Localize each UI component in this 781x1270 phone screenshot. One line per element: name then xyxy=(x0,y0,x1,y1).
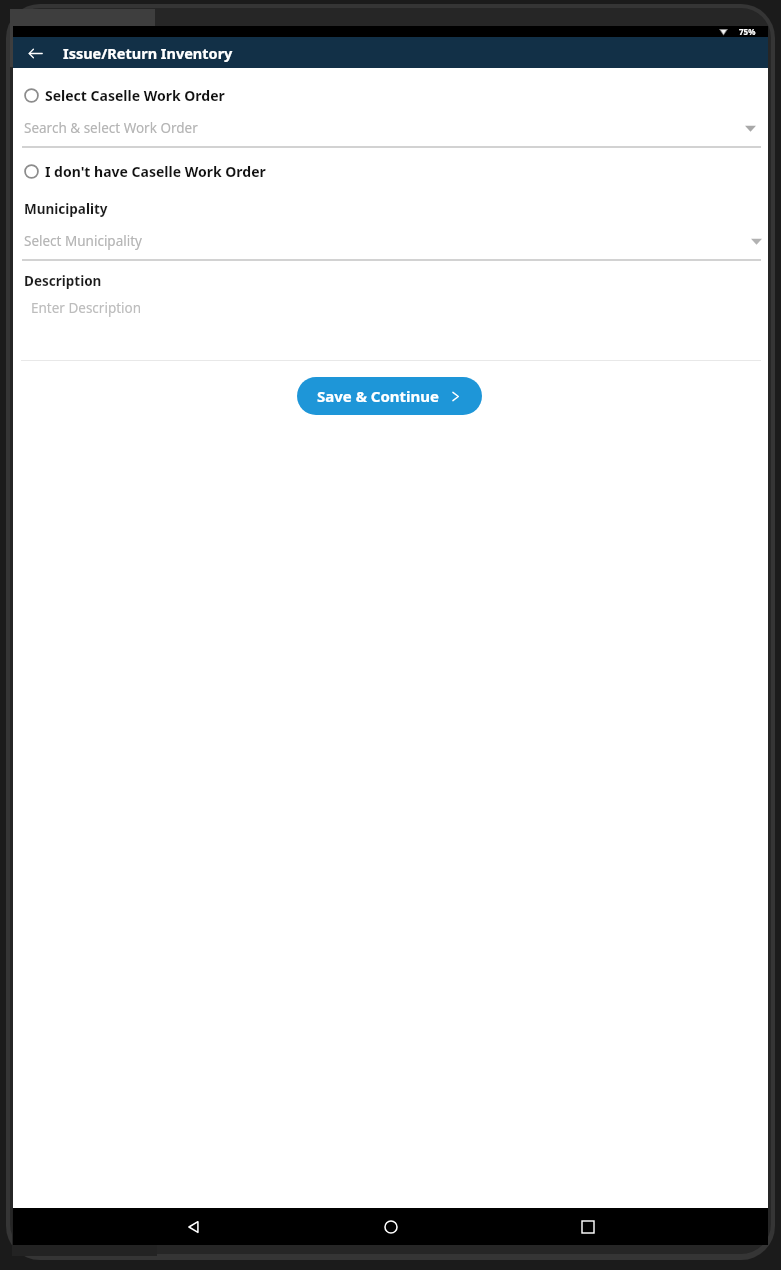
staticText: Municipality xyxy=(24,200,108,218)
button[interactable]: Back xyxy=(177,1210,211,1244)
button[interactable]: Back xyxy=(22,40,48,66)
button[interactable]: Recent apps xyxy=(571,1210,605,1244)
button[interactable]: Enter Description xyxy=(13,298,768,360)
staticText: Issue/Return Inventory xyxy=(63,43,233,63)
button[interactable]: I don't have Caselle Work Order xyxy=(13,160,768,183)
staticText: I don't have Caselle Work Order xyxy=(45,162,266,181)
staticText: Select Caselle Work Order xyxy=(45,86,225,105)
button[interactable]: Save & Continue xyxy=(297,377,482,415)
staticText: Description xyxy=(24,272,102,290)
staticText: Search & select Work Order xyxy=(24,119,745,137)
button[interactable]: Search & select Work Order xyxy=(13,119,768,148)
button[interactable]: Home xyxy=(374,1210,408,1244)
staticText: Select Municipality xyxy=(24,232,751,250)
button[interactable]: Select Municipality xyxy=(13,232,768,261)
staticText: 75% xyxy=(739,26,756,37)
button[interactable]: Select Caselle Work Order xyxy=(13,84,768,107)
staticText: Enter Description xyxy=(31,299,142,317)
staticText: Save & Continue xyxy=(317,386,440,406)
